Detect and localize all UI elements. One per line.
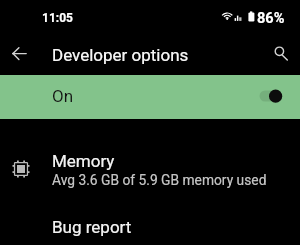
staticText: Bug report bbox=[52, 217, 132, 237]
staticText: 86% bbox=[257, 10, 285, 27]
button[interactable]: On bbox=[0, 75, 300, 119]
staticText: Avg 3.6 GB of 5.9 GB memory used bbox=[52, 172, 267, 188]
button[interactable]: Back bbox=[3, 37, 35, 69]
staticText: On bbox=[52, 86, 74, 106]
staticText: Developer options bbox=[52, 45, 189, 65]
button[interactable]: Search bbox=[262, 37, 294, 69]
staticText: 11:05 bbox=[42, 11, 73, 25]
button[interactable]: Memory bbox=[0, 119, 300, 191]
button[interactable]: Bug report bbox=[0, 191, 300, 245]
staticText: Memory bbox=[52, 151, 115, 171]
